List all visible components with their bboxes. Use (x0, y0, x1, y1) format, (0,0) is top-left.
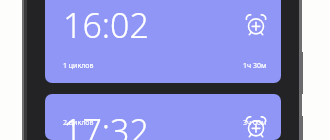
staticText: 16:02 (63, 2, 149, 48)
staticText: 1ч 30м (243, 61, 267, 71)
staticText: 17:32 (63, 108, 149, 140)
button[interactable]: Add alarm (245, 14, 267, 36)
staticText: 1 циклов (63, 61, 94, 71)
button[interactable]: 17:32 (45, 94, 281, 140)
button[interactable]: 16:02 (45, 0, 281, 83)
staticText: 3ч 00м (243, 118, 267, 128)
button[interactable]: Add alarm (245, 116, 267, 138)
staticText: 2 циклов (63, 118, 94, 128)
